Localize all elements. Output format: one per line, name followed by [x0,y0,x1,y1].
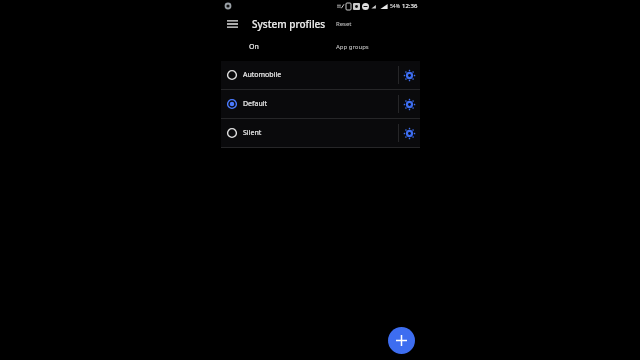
button[interactable]: On [246,40,262,54]
button[interactable]: Silent [221,119,398,147]
staticText: On [249,42,259,52]
button[interactable]: Reset [333,18,355,30]
button[interactable]: Default [221,90,398,118]
button[interactable]: Profile settings for Silent [399,119,420,147]
button[interactable]: Open navigation menu [222,14,242,34]
staticText: Reset [336,20,352,28]
staticText: App groups [336,43,369,51]
button[interactable]: Add profile [388,327,415,354]
staticText: 12:36 [402,2,418,10]
staticText: System profiles [252,17,326,31]
staticText: 54% [390,3,400,10]
button[interactable]: Profile settings for Automobile [399,61,420,89]
staticText: Silent [243,128,262,138]
staticText: Automobile [243,70,282,80]
button[interactable]: App groups [333,41,372,53]
button[interactable]: Automobile [221,61,398,89]
button[interactable]: Profile settings for Default [399,90,420,118]
staticText: Default [243,99,268,109]
